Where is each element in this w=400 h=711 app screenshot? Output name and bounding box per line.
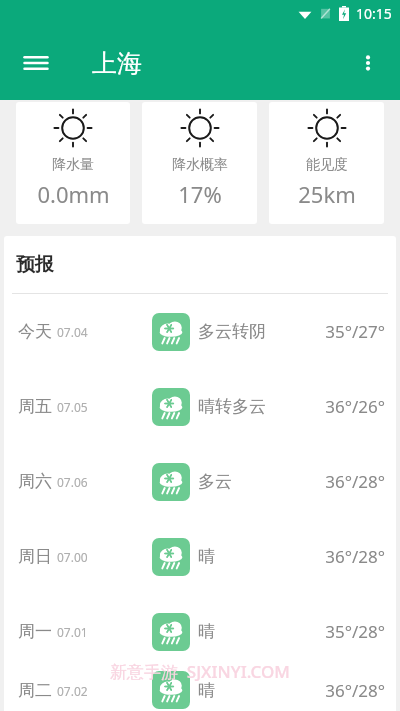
staticText: 多云 — [198, 471, 325, 492]
staticText: 25km — [298, 179, 356, 209]
staticText: 36°/26° — [325, 395, 385, 418]
staticText: 晴 — [198, 546, 325, 567]
staticText: 36°/28° — [325, 470, 385, 493]
button[interactable]: 周一 — [4, 594, 396, 669]
staticText: 周五 — [18, 396, 52, 417]
staticText: 晴 — [198, 680, 325, 701]
staticText: 周一 — [18, 621, 52, 642]
staticText: 新意手游 SJXINYI.COM — [110, 660, 290, 683]
button[interactable]: 降水量 — [16, 102, 130, 224]
button[interactable]: 降水概率 — [142, 102, 257, 224]
staticText: 晴转多云 — [198, 396, 325, 417]
staticText: 周日 — [18, 546, 52, 567]
button[interactable]: 周日 — [4, 519, 396, 594]
staticText: 07.02 — [57, 683, 88, 699]
staticText: 07.05 — [57, 399, 88, 415]
button[interactable]: 周二 — [4, 669, 396, 711]
staticText: 能见度 — [306, 156, 348, 174]
staticText: 35°/27° — [325, 320, 385, 343]
staticText: 周六 — [18, 471, 52, 492]
staticText: 10:15 — [356, 4, 392, 23]
button[interactable]: 周五 — [4, 369, 396, 444]
staticText: 0.0mm — [37, 179, 110, 209]
staticText: 上海 — [92, 48, 142, 79]
button[interactable]: More options — [346, 41, 390, 85]
staticText: 07.00 — [57, 549, 88, 565]
button[interactable]: 能见度 — [269, 102, 384, 224]
staticText: 35°/28° — [325, 620, 385, 643]
staticText: 07.06 — [57, 474, 88, 490]
staticText: 07.04 — [57, 324, 88, 340]
staticText: 多云转阴 — [198, 321, 325, 342]
staticText: 17% — [178, 179, 222, 209]
staticText: 周二 — [18, 680, 52, 701]
button[interactable]: 今天 — [4, 294, 396, 369]
staticText: 晴 — [198, 621, 325, 642]
staticText: 36°/28° — [325, 545, 385, 568]
staticText: 07.01 — [57, 624, 88, 640]
staticText: 36°/28° — [325, 679, 385, 702]
button[interactable]: 周六 — [4, 444, 396, 519]
staticText: 降水概率 — [172, 156, 228, 174]
button[interactable]: Menu — [12, 39, 60, 87]
staticText: 降水量 — [52, 156, 94, 174]
staticText: 今天 — [18, 321, 52, 342]
staticText: 预报 — [16, 253, 54, 277]
